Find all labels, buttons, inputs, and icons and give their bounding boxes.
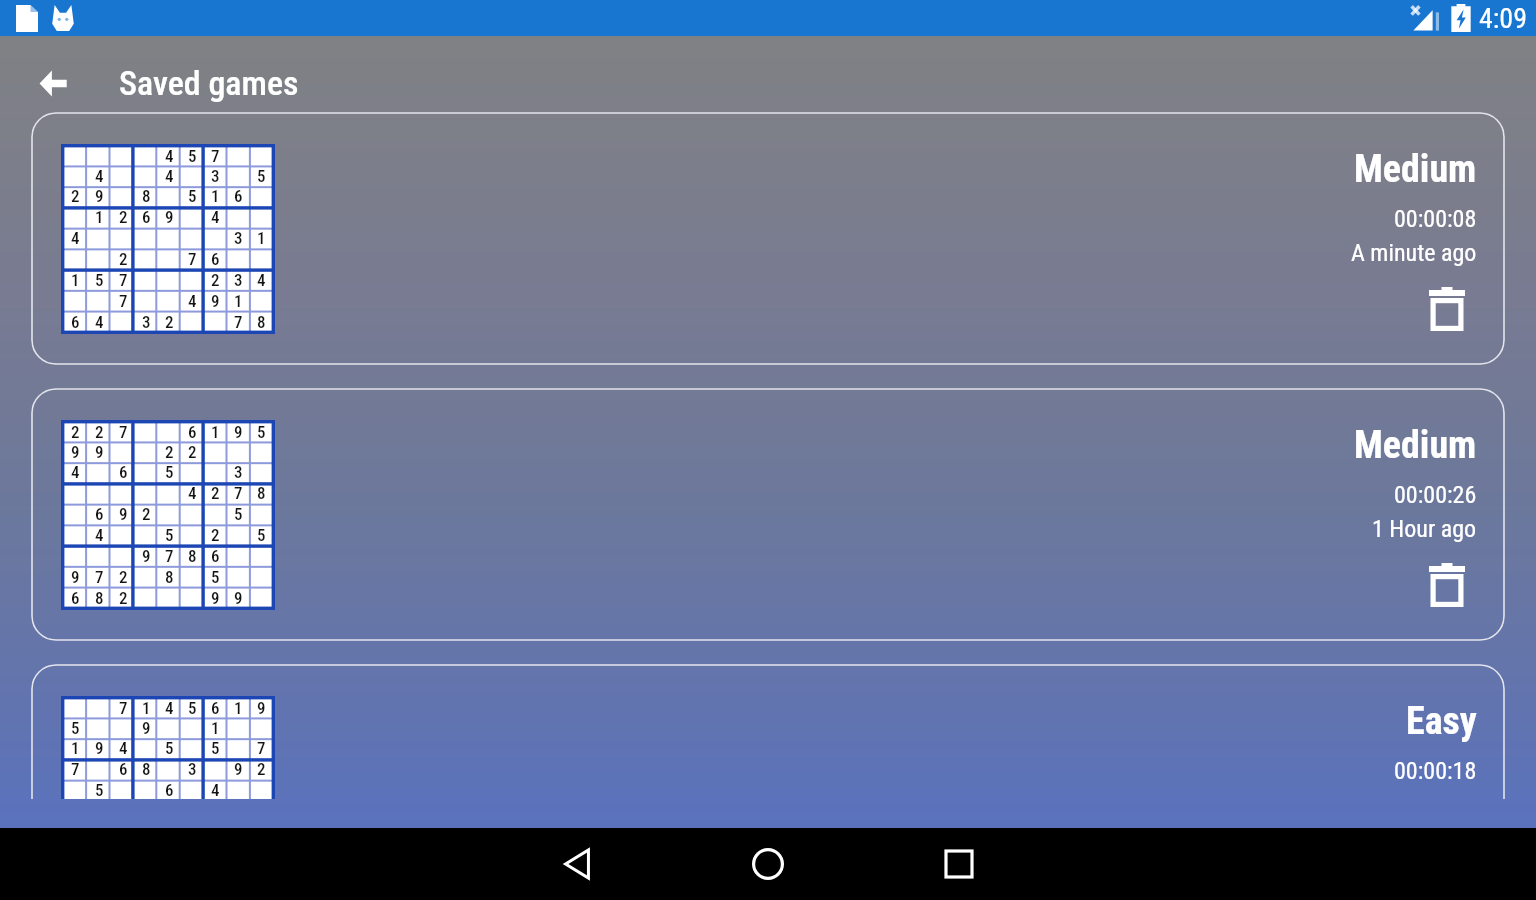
staticText: 9 [211,291,220,311]
staticText: 9 [142,718,151,738]
staticText: 2 [119,207,128,227]
staticText: 8 [95,588,104,608]
staticText: 4 [71,462,80,482]
staticText: 4 [211,207,220,227]
staticText: 1 [71,738,80,758]
staticText: 6 [95,504,104,524]
staticText: 9 [95,738,104,758]
staticText: 4 [257,270,266,290]
staticText: 1 Hour ago [1372,515,1477,543]
staticText: 5 [188,186,197,206]
staticText: 2 [119,567,128,587]
staticText: 9 [211,588,220,608]
staticText: 2 [142,504,151,524]
staticText: 6 [165,780,174,799]
staticText: Easy [1406,699,1477,744]
staticText: 7 [119,291,128,311]
staticText: 6 [119,759,128,779]
staticText: 2 [165,312,174,332]
staticText: 2 [211,483,220,503]
staticText: 3 [188,759,197,779]
button[interactable]: 7 [31,664,1505,799]
staticText: 6 [188,422,197,442]
button[interactable]: Delete saved game [1423,561,1471,609]
staticText: 8 [257,483,266,503]
staticText: 9 [71,567,80,587]
staticText: 8 [165,567,174,587]
staticText: 2 [211,525,220,545]
staticText: 3 [211,166,220,186]
staticText: 00:00:26 [1394,481,1477,509]
staticText: 2 [71,186,80,206]
staticText: 5 [71,718,80,738]
staticText: 3 [234,462,243,482]
staticText: 5 [165,462,174,482]
staticText: 6 [234,186,243,206]
staticText: 9 [142,546,151,566]
staticText: 4 [188,483,197,503]
staticText: 2 [119,588,128,608]
staticText: 2 [71,422,80,442]
staticText: 1 [257,228,266,248]
staticText: 00:00:18 [1394,757,1477,785]
staticText: 9 [234,422,243,442]
staticText: 9 [234,759,243,779]
staticText: 8 [257,312,266,332]
staticText: Saved games [119,63,299,103]
button[interactable]: Delete saved game [1423,285,1471,333]
staticText: 7 [257,738,266,758]
button[interactable]: 2 [31,388,1505,641]
staticText: 4 [211,780,220,799]
staticText: 1 [71,270,80,290]
staticText: 6 [142,207,151,227]
staticText: 3 [234,270,243,290]
button[interactable]: Back [545,832,609,896]
staticText: 4 [71,228,80,248]
staticText: 3 [142,312,151,332]
button[interactable]: 4 [31,112,1505,365]
staticText: 6 [211,546,220,566]
staticText: 5 [165,525,174,545]
staticText: 7 [119,698,128,718]
staticText: 9 [71,442,80,462]
staticText: 4 [165,146,174,166]
staticText: 5 [257,166,266,186]
staticText: Medium [1354,423,1477,468]
staticText: 5 [234,504,243,524]
staticText: 5 [95,270,104,290]
staticText: 1 [211,186,220,206]
staticText: 7 [119,270,128,290]
button[interactable]: Recent apps [927,832,991,896]
staticText: 1 [234,698,243,718]
staticText: 6 [71,312,80,332]
staticText: 3 [234,228,243,248]
staticText: A minute ago [1351,239,1477,267]
staticText: 8 [142,186,151,206]
staticText: 6 [211,698,220,718]
staticText: 1 [142,698,151,718]
staticText: 5 [165,738,174,758]
staticText: 7 [234,483,243,503]
staticText: 2 [119,249,128,269]
staticText: 7 [165,546,174,566]
button[interactable]: Home [736,832,800,896]
staticText: 6 [119,462,128,482]
staticText: 1 [95,207,104,227]
staticText: 5 [211,738,220,758]
staticText: 4 [95,166,104,186]
staticText: 6 [71,588,80,608]
staticText: 5 [188,146,197,166]
staticText: 5 [257,525,266,545]
staticText: 4 [165,698,174,718]
staticText: 1 [211,422,220,442]
staticText: 7 [234,312,243,332]
staticText: 8 [142,759,151,779]
staticText: 7 [71,759,80,779]
staticText: 9 [95,442,104,462]
staticText: 9 [165,207,174,227]
staticText: 9 [234,588,243,608]
button[interactable]: Back [32,62,74,104]
staticText: 7 [119,422,128,442]
staticText: 4 [95,525,104,545]
staticText: 9 [95,186,104,206]
